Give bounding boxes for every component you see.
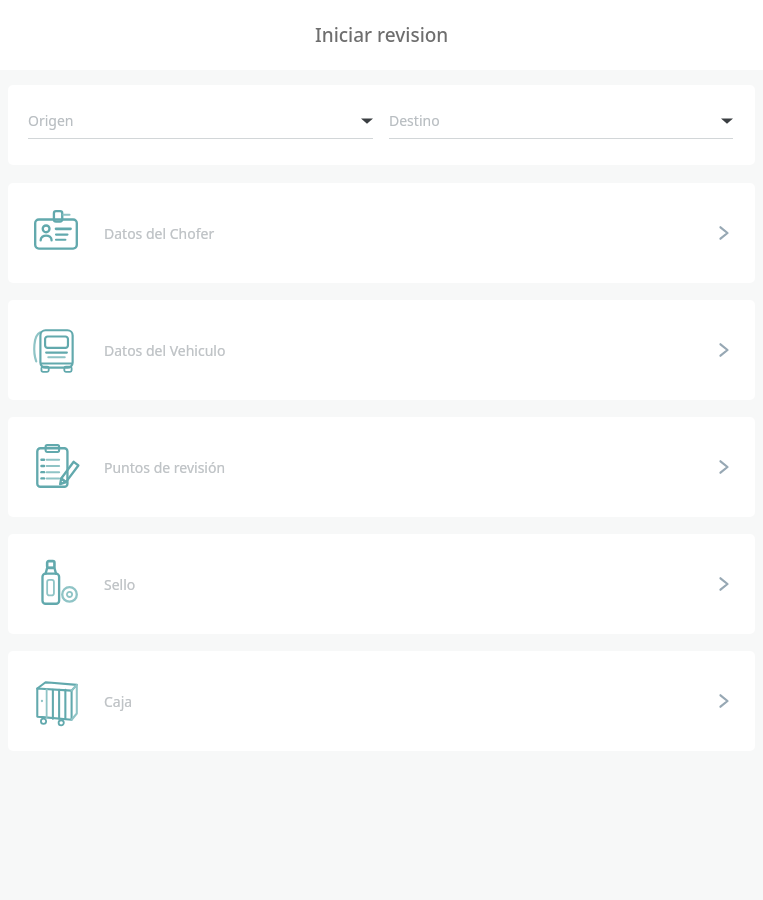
staticText: Iniciar revision	[315, 22, 449, 48]
button[interactable]: Datos del Chofer	[8, 183, 755, 283]
staticText: Datos del Vehiculo	[104, 341, 713, 360]
other: Puntos de revisión	[713, 456, 735, 478]
button[interactable]: Datos del Vehiculo	[8, 300, 755, 400]
button[interactable]: Caja	[8, 651, 755, 751]
staticText: Puntos de revisión	[104, 458, 713, 477]
other: Datos del Chofer	[713, 222, 735, 244]
button[interactable]: Destino	[389, 111, 733, 139]
other: Caja	[713, 690, 735, 712]
staticText: Caja	[104, 692, 713, 711]
button[interactable]: Sello	[8, 534, 755, 634]
staticText: Destino	[389, 111, 721, 130]
other: Datos del Vehiculo	[713, 339, 735, 361]
staticText: Sello	[104, 575, 713, 594]
button[interactable]: Puntos de revisión	[8, 417, 755, 517]
other: Sello	[713, 573, 735, 595]
staticText: Datos del Chofer	[104, 224, 713, 243]
button[interactable]: Origen	[28, 111, 373, 139]
staticText: Origen	[28, 111, 361, 130]
